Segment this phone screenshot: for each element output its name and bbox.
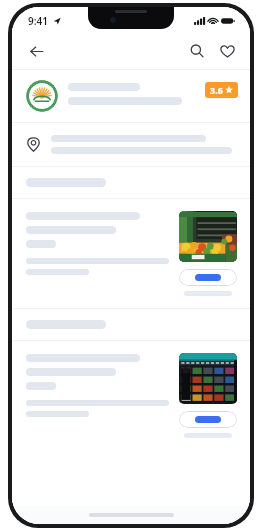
staticText: 9:41 [28,14,48,28]
button[interactable]: Add [179,269,237,286]
button[interactable]: Search [184,38,210,64]
button[interactable]: Add [12,199,250,308]
button[interactable] [12,123,250,166]
button[interactable]: 3.6 [205,82,238,98]
button[interactable]: Back [22,37,50,65]
button[interactable]: Add [12,341,250,450]
button[interactable]: 3.6 [26,80,238,112]
button[interactable]: Favorite [214,38,240,64]
button[interactable]: Add [179,411,237,428]
staticText: 3.6 [210,84,223,96]
